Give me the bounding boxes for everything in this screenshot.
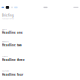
staticText: MARKETS: [2, 41, 9, 43]
staticText: SCIENCE: [2, 55, 8, 57]
staticText: Tuesday 18 Feb: [2, 18, 14, 20]
staticText: WORLD: [2, 28, 7, 30]
staticText: CULTURE: [2, 70, 9, 72]
staticText: Headline three: [2, 58, 25, 62]
button[interactable]: SCIENCE: [0, 55, 80, 62]
staticText: Headline one: [2, 31, 23, 34]
button[interactable]: WORLD: [0, 28, 80, 34]
button[interactable]: CULTURE: [0, 70, 80, 76]
staticText: Headline two: [2, 44, 22, 47]
button[interactable]: MARKETS: [0, 41, 80, 47]
staticText: Headline four: [2, 73, 23, 76]
staticText: Briefing: [2, 14, 14, 17]
